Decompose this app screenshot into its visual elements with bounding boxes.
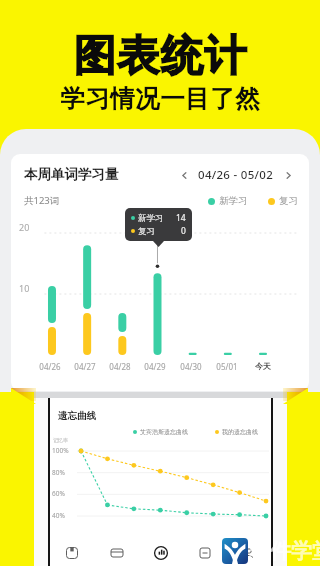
staticText: 04/26 - 05/02 <box>198 167 274 183</box>
staticText: 复习 <box>279 195 298 207</box>
staticText: 05/01 <box>216 361 238 372</box>
staticText: 04/29 <box>144 361 166 372</box>
staticText: 软件学堂 <box>249 538 320 564</box>
button[interactable]: Cards <box>94 540 139 566</box>
staticText: 本周单词学习量 <box>24 166 119 183</box>
staticText: 40% <box>52 511 65 520</box>
staticText: 新学习 <box>219 195 248 207</box>
staticText: 04/26 <box>39 361 61 372</box>
staticText: 0 <box>181 225 186 237</box>
button[interactable]: Profile <box>227 540 271 566</box>
staticText: 10 <box>19 282 30 294</box>
staticText: 我的遗忘曲线 <box>222 428 258 436</box>
staticText: 04/30 <box>180 361 202 372</box>
staticText: 学习情况一目了然 <box>60 83 260 114</box>
button[interactable]: Review <box>183 540 227 566</box>
staticText: 图表统计 <box>73 30 247 83</box>
staticText: 04/27 <box>74 361 96 372</box>
staticText: 14 <box>176 212 186 224</box>
button[interactable]: Statistics <box>139 540 183 566</box>
staticText: 复习 <box>138 226 155 237</box>
staticText: 60% <box>52 489 65 498</box>
staticText: 新学习 <box>138 213 164 224</box>
staticText: 遗忘曲线 <box>58 410 96 422</box>
staticText: 记忆率 <box>53 437 68 443</box>
staticText: 共123词 <box>24 194 60 207</box>
button[interactable]: Previous week <box>176 167 192 183</box>
staticText: 20 <box>19 221 30 233</box>
button[interactable]: Notebook <box>49 540 94 566</box>
staticText: 今天 <box>255 361 271 371</box>
staticText: 100% <box>52 446 69 455</box>
staticText: 04/28 <box>109 361 131 372</box>
staticText: 80% <box>52 468 65 477</box>
button[interactable]: Next week <box>280 167 296 183</box>
staticText: 艾宾浩斯遗忘曲线 <box>140 428 188 436</box>
